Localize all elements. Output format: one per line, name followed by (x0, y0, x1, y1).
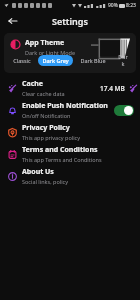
staticText: Dark Grey (42, 57, 69, 64)
staticText: Privacy Policy (22, 123, 70, 133)
staticText: Social links, policy (22, 178, 69, 185)
staticText: Dark (117, 53, 129, 67)
staticText: Cache (22, 79, 44, 89)
staticText: 90% (108, 2, 118, 9)
button[interactable]: About Us (0, 165, 140, 187)
staticText: 8:23 (126, 2, 136, 9)
button[interactable]: Terms and Conditions (0, 143, 140, 165)
button[interactable]: Dark (113, 51, 133, 69)
staticText: About Us (22, 167, 54, 177)
button[interactable] (114, 105, 134, 116)
button[interactable]: Enable Push Notification (0, 99, 140, 121)
staticText: On/off Notification (22, 112, 71, 119)
staticText: This app privacy policy (22, 134, 81, 141)
staticText: Settings (52, 15, 88, 27)
staticText: Enable Push Notification (22, 101, 108, 111)
staticText: Dark or Light Mode (25, 49, 76, 56)
staticText: Terms and Conditions (22, 145, 98, 155)
staticText: Clear cache data (22, 90, 65, 97)
staticText: This app Terms and Conditions (22, 156, 102, 163)
button[interactable]: Back (6, 14, 20, 28)
staticText: 17.4 MB (100, 84, 125, 93)
staticText: App Theme (25, 38, 65, 48)
button[interactable]: Dark Blue (76, 55, 110, 66)
button[interactable]: Classic (9, 55, 35, 66)
staticText: Dark Blue (80, 57, 106, 64)
staticText: Classic (13, 57, 31, 64)
button[interactable]: Dark Grey (38, 55, 73, 66)
button[interactable]: Cache (0, 77, 140, 99)
button[interactable]: Privacy Policy (0, 121, 140, 143)
